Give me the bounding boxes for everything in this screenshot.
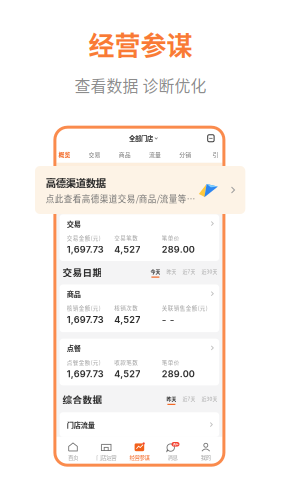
button[interactable]: 今天 <box>150 268 160 278</box>
staticText: 1,697.73 <box>67 314 104 325</box>
staticText: 核销次数 <box>114 304 138 312</box>
staticText: 1,697.73 <box>67 368 104 379</box>
staticText: 点此查看高德渠道交易/商品/流量等数据 <box>46 192 198 205</box>
button[interactable]: 昨天 <box>166 268 176 278</box>
button[interactable]: 流量 <box>140 150 170 159</box>
button[interactable]: 分销 <box>170 150 200 159</box>
staticText: 查看数据 诊断优化 <box>74 74 206 97</box>
staticText: 289.00 <box>162 244 195 255</box>
staticText: 99+ <box>172 442 178 446</box>
button[interactable]: 门店运营 <box>90 438 123 466</box>
staticText: - - <box>162 314 175 326</box>
staticText: 点餐 <box>67 343 81 353</box>
staticText: 关联销售金额(元) <box>162 304 208 312</box>
staticText: 高德渠道数据 <box>46 175 106 190</box>
staticText: 289.00 <box>162 368 195 379</box>
staticText: 交易金额(元) <box>67 234 101 242</box>
button[interactable]: 近7天 <box>182 395 195 405</box>
staticText: 概览 <box>58 150 70 159</box>
button[interactable]: 我的 <box>189 438 222 466</box>
staticText: 首页 <box>68 453 78 461</box>
button[interactable]: 近30天 <box>201 395 217 405</box>
staticText: 4,527 <box>114 244 140 255</box>
button[interactable]: 商品 <box>60 284 219 332</box>
staticText: 收款笔数 <box>114 358 138 366</box>
button[interactable]: 首页 <box>56 438 90 466</box>
button[interactable]: 交易 <box>60 214 219 261</box>
staticText: 门店流量 <box>67 419 95 430</box>
button[interactable]: 经营参谋 <box>123 438 156 466</box>
button[interactable]: 高德渠道数据 <box>35 166 245 214</box>
staticText: 商品 <box>67 288 81 299</box>
staticText: 昨天 <box>166 395 176 402</box>
staticText: 商品 <box>119 150 131 159</box>
staticText: 4,527 <box>114 314 140 325</box>
button[interactable]: 概览 <box>49 150 79 159</box>
staticText: 近30天 <box>201 268 217 275</box>
button[interactable]: 引 <box>200 150 230 159</box>
staticText: 昨天 <box>166 268 176 275</box>
staticText: 我的 <box>201 453 211 461</box>
staticText: 近30天 <box>201 395 217 402</box>
staticText: 引 <box>212 150 218 159</box>
button[interactable]: 近7天 <box>182 268 195 278</box>
button[interactable]: 门店流量 <box>60 412 219 437</box>
staticText: 全部门店 <box>129 134 153 143</box>
button[interactable]: 近30天 <box>201 268 217 278</box>
staticText: 经营参谋 <box>129 453 149 461</box>
staticText: 经营参谋 <box>88 25 192 63</box>
button[interactable]: 商品 <box>110 150 140 159</box>
staticText: 交易日期 <box>62 265 102 279</box>
staticText: 近7天 <box>182 395 195 402</box>
staticText: 近7天 <box>182 268 195 275</box>
staticText: 笔单价 <box>162 234 180 242</box>
staticText: 点餐金额(元) <box>67 358 101 366</box>
button[interactable]: 全部门店 <box>129 134 158 143</box>
staticText: 核销金额(元) <box>67 304 101 312</box>
staticText: 1,697.73 <box>67 244 104 255</box>
staticText: 交易 <box>89 150 101 159</box>
staticText: 4,527 <box>114 368 140 379</box>
staticText: 笔单价 <box>162 358 180 366</box>
button[interactable]: 昨天 <box>166 395 176 405</box>
staticText: 门店运营 <box>96 453 116 461</box>
button[interactable]: 扫一扫 <box>207 134 215 143</box>
staticText: 流量 <box>149 150 161 159</box>
staticText: 交易笔数 <box>114 234 138 242</box>
button[interactable]: 99+ <box>156 438 189 466</box>
staticText: 消息 <box>168 453 178 461</box>
staticText: 交易 <box>67 218 81 229</box>
button[interactable]: 交易 <box>79 150 110 159</box>
button[interactable]: 点餐 <box>60 339 219 385</box>
staticText: 分销 <box>179 150 191 159</box>
staticText: 综合数据 <box>62 392 102 406</box>
staticText: 今天 <box>150 268 160 275</box>
